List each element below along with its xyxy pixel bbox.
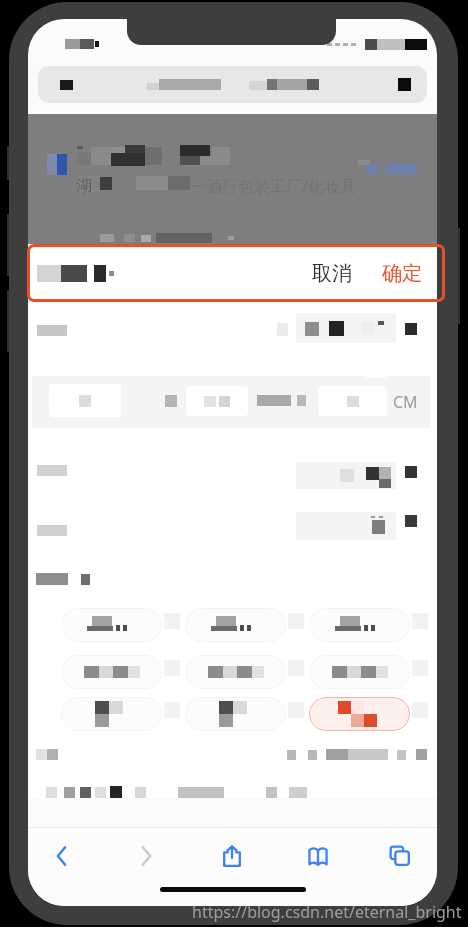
button[interactable]: [185, 655, 286, 689]
button[interactable]: 取消: [28, 244, 437, 302]
staticText: 取消: [312, 261, 352, 286]
staticText: https://blog.csdn.net/eternal_bright: [192, 901, 462, 923]
button[interactable]: [32, 376, 430, 428]
button[interactable]: [38, 66, 427, 103]
button[interactable]: [28, 500, 437, 560]
button[interactable]: Share: [210, 828, 254, 883]
button[interactable]: Tabs: [378, 828, 422, 883]
staticText: CM: [393, 391, 418, 413]
staticText: 确定: [382, 261, 422, 286]
button[interactable]: [61, 608, 162, 642]
button[interactable]: Bookmarks: [296, 828, 340, 883]
button[interactable]: [61, 697, 162, 731]
button[interactable]: [61, 655, 162, 689]
button[interactable]: Forward: [124, 828, 168, 883]
button[interactable]: [185, 608, 286, 642]
button[interactable]: [185, 697, 286, 731]
button[interactable]: [28, 428, 437, 500]
button[interactable]: [309, 655, 410, 689]
staticText: 一酒行包装工厂/化妆具: [190, 175, 356, 197]
button[interactable]: [309, 608, 410, 642]
button[interactable]: Back: [40, 828, 84, 883]
staticText: 湖: [76, 176, 92, 196]
button[interactable]: [28, 302, 437, 373]
button[interactable]: [309, 697, 410, 731]
